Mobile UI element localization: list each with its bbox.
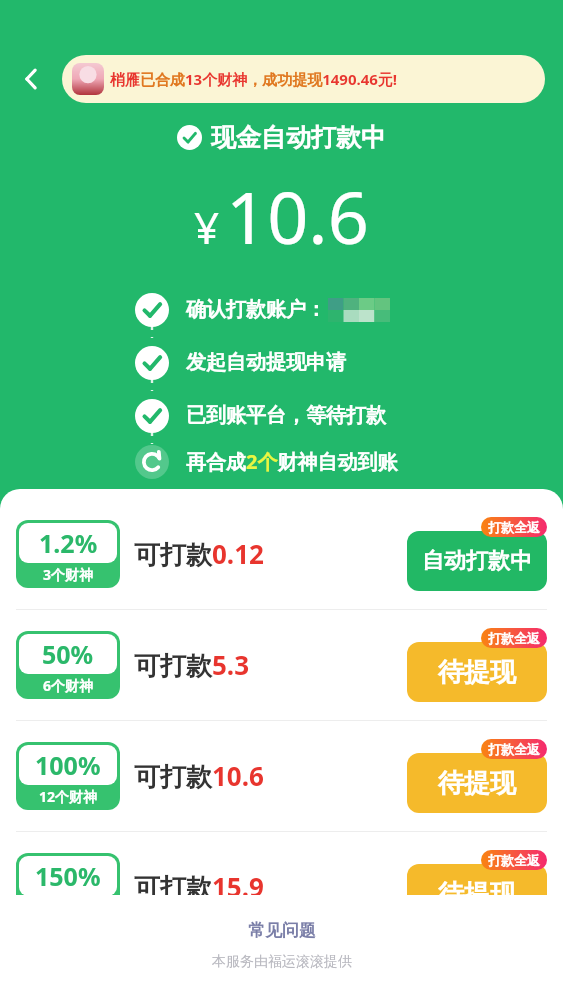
- button[interactable]: 自动打款中: [407, 531, 547, 591]
- staticText: 确认打款账户：: [186, 297, 326, 322]
- staticText: 12个财神: [39, 787, 98, 806]
- button[interactable]: 100%: [0, 721, 563, 831]
- staticText: 150%: [35, 859, 101, 893]
- staticText: 打款全返: [488, 741, 540, 757]
- staticText: 自动打款中: [422, 547, 532, 575]
- button[interactable]: 待提现: [407, 864, 547, 924]
- button[interactable]: 常见问题: [236, 918, 328, 943]
- staticText: 梢雁已合成13个财神，成功提现1490.46元!: [110, 69, 398, 89]
- staticText: 打款全返: [488, 630, 540, 646]
- staticText: 常见问题: [248, 920, 316, 941]
- staticText: 10.6: [226, 167, 369, 265]
- staticText: 打款全返: [488, 852, 540, 868]
- button[interactable]: 1.2%: [0, 499, 563, 609]
- staticText: ¥: [194, 197, 220, 257]
- staticText: 发起自动提现申请: [186, 350, 346, 375]
- staticText: 待提现: [438, 656, 516, 689]
- staticText: 待提现: [438, 767, 516, 800]
- button[interactable]: 梢雁已合成13个财神，成功提现1490.46元!: [62, 55, 545, 103]
- staticText: 1.2%: [39, 526, 98, 560]
- staticText: 可打款0.12: [134, 536, 264, 572]
- staticText: 100%: [35, 748, 101, 782]
- button[interactable]: Back: [0, 52, 62, 106]
- button[interactable]: 待提现: [407, 753, 547, 813]
- staticText: 本服务由福运滚滚提供: [212, 953, 352, 971]
- staticText: 可打款10.6: [134, 758, 264, 794]
- staticText: 再合成2个财神自动到账: [186, 448, 398, 475]
- staticText: 3个财神: [43, 565, 94, 584]
- staticText: 可打款5.3: [134, 647, 250, 683]
- button[interactable]: 待提现: [407, 642, 547, 702]
- staticText: 打款全返: [488, 519, 540, 535]
- staticText: 已到账平台，等待打款: [186, 403, 386, 428]
- staticText: 现金自动打款中: [211, 122, 386, 153]
- button[interactable]: 150%: [0, 832, 563, 942]
- staticText: 可打款15.9: [134, 869, 264, 905]
- staticText: 6个财神: [43, 676, 94, 695]
- staticText: 待提现: [438, 878, 516, 911]
- staticText: 50%: [42, 637, 94, 671]
- button[interactable]: 50%: [0, 610, 563, 720]
